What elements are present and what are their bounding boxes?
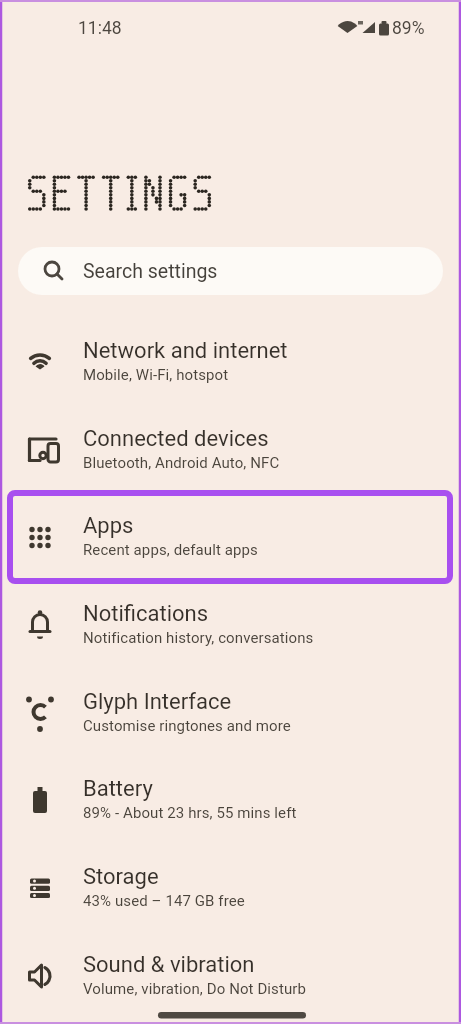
button[interactable]: Glyph Interface [0,669,461,757]
button[interactable]: Sound & vibration [0,932,461,1020]
button[interactable]: Connected devices [0,406,461,494]
staticText: Glyph Interface [83,689,232,715]
staticText: 11:48 [78,18,122,39]
button[interactable]: Network and internet [0,318,461,406]
staticText: Search settings [83,260,218,283]
staticText: 43% used – 147 GB free [83,892,245,910]
staticText: Network and internet [83,338,288,364]
button[interactable]: Apps [0,493,461,581]
staticText: Sound & vibration [83,952,255,978]
staticText: Notification history, conversations [83,629,314,647]
staticText: Volume, vibration, Do Not Disturb [83,980,307,998]
staticText: Notifications [83,601,209,627]
button[interactable]: Storage [0,844,461,932]
button[interactable]: Battery [0,756,461,844]
staticText: Storage [83,864,159,890]
staticText: Apps [83,513,134,539]
button[interactable]: Notifications [0,581,461,669]
staticText: 89% - About 23 hrs, 55 mins left [83,804,297,822]
staticText: 89% [392,18,425,39]
staticText: Recent apps, default apps [83,541,258,559]
staticText: Mobile, Wi-Fi, hotspot [83,366,229,384]
staticText: Battery [83,776,153,802]
staticText: Customise ringtones and more [83,717,291,735]
button[interactable]: Search settings [18,247,443,295]
staticText: Connected devices [83,426,269,452]
staticText: Bluetooth, Android Auto, NFC [83,454,280,472]
